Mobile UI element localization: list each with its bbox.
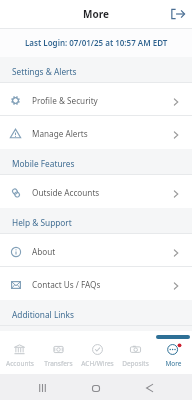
staticText: More: [83, 7, 109, 21]
staticText: Help & Support: [12, 217, 72, 228]
button[interactable]: About: [0, 234, 192, 267]
staticText: Additional Links: [12, 309, 74, 320]
staticText: Settings & Alerts: [12, 66, 77, 77]
staticText: ACH/Wires: [81, 359, 114, 368]
button[interactable]: Contact Us / FAQs: [0, 267, 192, 300]
staticText: More: [165, 359, 182, 368]
button[interactable]: Home: [66, 374, 120, 400]
staticText: Outside Accounts: [32, 187, 100, 198]
staticText: Profile & Security: [32, 95, 98, 106]
button[interactable]: Manage Alerts: [0, 116, 192, 149]
staticText: Last Login: 07/01/25 at 10:57 AM EDT: [25, 37, 168, 48]
staticText: Transfers: [44, 359, 73, 368]
button[interactable]: Profile & Security: [0, 83, 192, 116]
staticText: About: [32, 246, 56, 257]
button[interactable]: Transfers: [39, 331, 78, 374]
staticText: Manage Alerts: [32, 128, 88, 139]
staticText: Mobile Features: [12, 158, 75, 169]
button[interactable]: Recent apps: [19, 374, 66, 400]
staticText: Contact Us / FAQs: [32, 279, 101, 290]
button[interactable]: Outside Accounts: [0, 175, 192, 208]
staticText: Deposits: [122, 359, 149, 368]
button[interactable]: Deposits: [116, 331, 154, 374]
button[interactable]: ACH/Wires: [78, 331, 116, 374]
button[interactable]: Accounts: [0, 331, 39, 374]
button[interactable]: More: [154, 331, 192, 374]
button[interactable]: Log out: [169, 5, 187, 23]
button[interactable]: Back: [120, 374, 173, 400]
staticText: Accounts: [6, 359, 34, 368]
